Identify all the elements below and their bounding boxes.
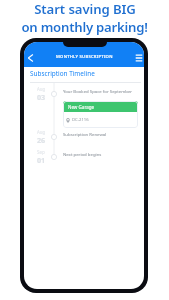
staticText: New Garage (68, 104, 94, 110)
staticText: 26 (37, 135, 46, 145)
staticText: Sep (37, 149, 45, 155)
staticText: on monthly parking! (21, 18, 148, 36)
staticText: Subscription Timeline (30, 69, 95, 78)
staticText: 01 (37, 155, 46, 165)
staticText: Your Booked Space for September (63, 88, 133, 94)
button[interactable]: Back (24, 52, 36, 64)
staticText: MONTHLY SUBSCRIPTION (56, 54, 113, 60)
staticText: Aug (37, 129, 46, 135)
staticText: 03 (37, 92, 46, 102)
staticText: Aug (37, 86, 46, 92)
staticText: Subscription Renewal (63, 131, 107, 137)
staticText: DC-2116 (72, 117, 89, 123)
button[interactable]: Menu (133, 52, 144, 64)
button[interactable]: New Garage (63, 101, 138, 128)
staticText: Next period begins (63, 151, 102, 157)
staticText: Start saving BIG (34, 0, 136, 18)
